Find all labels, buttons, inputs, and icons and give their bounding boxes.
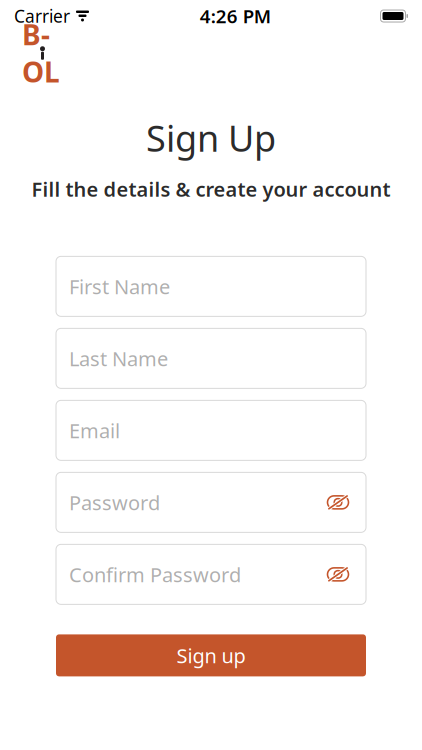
button[interactable]: Show Password [321,485,355,519]
button[interactable]: Password [56,472,366,532]
staticText: Confirm Password [69,561,241,588]
staticText: 4:26 PM [200,4,271,28]
button[interactable]: Sign up [56,634,366,676]
staticText: Sign up [176,642,245,669]
staticText: Sign Up [146,114,276,162]
staticText: Carrier [14,4,70,27]
button[interactable]: Confirm Password [56,544,366,604]
staticText: Last Name [69,345,168,372]
staticText: Email [69,417,120,444]
button[interactable]: Show Confirm Password [321,557,355,591]
staticText: BOL [22,16,60,90]
button[interactable]: Last Name [56,328,366,388]
staticText: Password [69,489,160,516]
button[interactable]: First Name [56,256,366,316]
staticText: Fill the details & create your account [31,176,390,202]
button[interactable]: Email [56,400,366,460]
staticText: First Name [69,273,170,300]
